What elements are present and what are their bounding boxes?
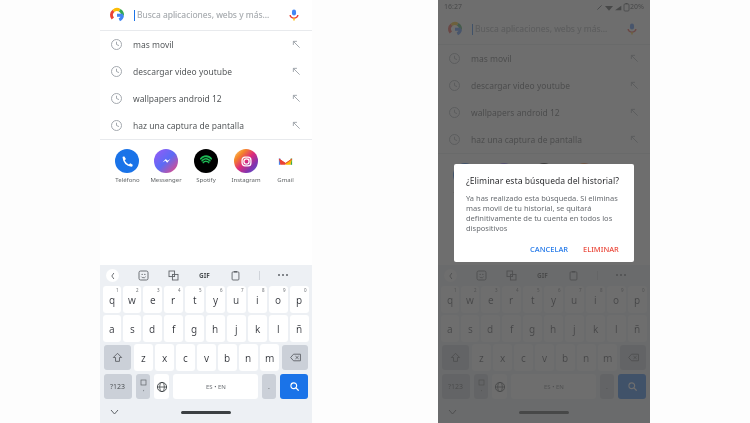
button[interactable]: y [206, 286, 225, 313]
button[interactable]: Messenger [147, 148, 185, 185]
button[interactable]: v [535, 344, 554, 371]
button[interactable]: f [164, 315, 183, 342]
button[interactable]: p [628, 286, 647, 313]
button[interactable]: b [218, 344, 237, 371]
button[interactable]: sticker [475, 269, 488, 282]
button[interactable]: i [248, 286, 267, 313]
button[interactable]: Spotify [187, 148, 225, 185]
button[interactable]: g [185, 315, 204, 342]
button[interactable]: haz una captura de pantalla [438, 126, 650, 153]
button[interactable]: z [472, 344, 491, 371]
button[interactable]: s [123, 315, 141, 342]
button[interactable]: j [565, 315, 584, 342]
button[interactable]: q [441, 286, 459, 313]
button[interactable]: x [493, 344, 512, 371]
button[interactable]: Mayúsculas [442, 345, 469, 370]
button[interactable]: ES • EN [173, 374, 258, 399]
button[interactable]: portapapeles [567, 269, 580, 282]
button[interactable]: Messenger [485, 162, 523, 199]
button[interactable]: sticker [137, 269, 150, 282]
button[interactable]: Gmail [266, 148, 304, 185]
button[interactable]: i [586, 286, 605, 313]
button[interactable]: h [544, 315, 563, 342]
button[interactable]: Buscar [280, 374, 308, 399]
button[interactable]: j [227, 315, 246, 342]
button[interactable]: g [523, 315, 542, 342]
button[interactable]: p [290, 286, 309, 313]
button[interactable]: t [523, 286, 542, 313]
button[interactable]: Búsqueda por voz [286, 7, 302, 23]
button[interactable]: wallpapers android 12 [100, 85, 312, 112]
button[interactable]: s [461, 315, 479, 342]
button[interactable]: Buscar [618, 374, 646, 399]
button[interactable]: Búsqueda por voz [624, 21, 640, 37]
button[interactable]: Atrás [444, 269, 457, 282]
button[interactable]: Borrar [620, 345, 646, 370]
button[interactable]: a [103, 315, 121, 342]
button[interactable]: u [565, 286, 584, 313]
button[interactable]: Busca aplicaciones, webs y más... [100, 0, 312, 30]
button[interactable]: x [155, 344, 174, 371]
button[interactable]: v [197, 344, 216, 371]
button[interactable]: Borrar [282, 345, 308, 370]
button[interactable]: ñ [290, 315, 309, 342]
button[interactable]: Teléfono [446, 162, 484, 199]
button[interactable]: portapapeles [229, 269, 242, 282]
button[interactable]: traducir [505, 269, 518, 282]
button[interactable]: d [481, 315, 500, 342]
button[interactable]: GIF [197, 269, 212, 282]
button[interactable]: b [556, 344, 575, 371]
button[interactable]: l [269, 315, 288, 342]
button[interactable]: r [164, 286, 183, 313]
button[interactable]: y [544, 286, 563, 313]
button[interactable]: Más opciones [615, 269, 627, 281]
button[interactable]: h [206, 315, 225, 342]
button[interactable]: GIF [535, 269, 550, 282]
button[interactable]: traducir [167, 269, 180, 282]
button[interactable]: Ocultar teclado [108, 406, 120, 418]
button[interactable]: Atrás [106, 269, 119, 282]
button[interactable]: mas movil [438, 45, 650, 72]
button[interactable]: k [586, 315, 605, 342]
button[interactable]: u [227, 286, 246, 313]
button[interactable]: mas movil [100, 31, 312, 58]
button[interactable]: t [185, 286, 204, 313]
button[interactable]: Mayúsculas [104, 345, 131, 370]
button[interactable]: Teléfono [108, 148, 146, 185]
button[interactable]: w [123, 286, 141, 313]
button[interactable]: c [514, 344, 533, 371]
button[interactable]: Instagram [227, 148, 265, 185]
button[interactable]: ELIMINAR [578, 241, 624, 257]
button[interactable]: d [143, 315, 162, 342]
button[interactable]: f [502, 315, 521, 342]
button[interactable]: k [248, 315, 267, 342]
button[interactable]: Busca aplicaciones, webs y más... [438, 14, 650, 44]
button[interactable]: r [502, 286, 521, 313]
button[interactable]: e [481, 286, 500, 313]
button[interactable]: ?123 [104, 374, 132, 399]
button[interactable]: m [598, 344, 617, 371]
button[interactable]: o [269, 286, 288, 313]
button[interactable]: z [134, 344, 153, 371]
button[interactable]: n [577, 344, 596, 371]
button[interactable]: a [441, 315, 459, 342]
button[interactable]: Gmail [604, 162, 642, 199]
button[interactable]: Más opciones [277, 269, 289, 281]
button[interactable]: m [260, 344, 279, 371]
button[interactable]: descargar video youtube [438, 72, 650, 99]
button[interactable]: q [103, 286, 121, 313]
button[interactable]: ñ [628, 315, 647, 342]
button[interactable]: o [607, 286, 626, 313]
button[interactable]: Cambiar idioma [492, 374, 507, 399]
button[interactable]: Emoji y coma [136, 374, 150, 399]
button[interactable]: Ocultar teclado [446, 406, 458, 418]
button[interactable]: l [607, 315, 626, 342]
button[interactable]: Cambiar idioma [154, 374, 169, 399]
button[interactable]: haz una captura de pantalla [100, 112, 312, 139]
button[interactable]: CANCELAR [525, 241, 574, 257]
button[interactable]: Instagram [565, 162, 603, 199]
